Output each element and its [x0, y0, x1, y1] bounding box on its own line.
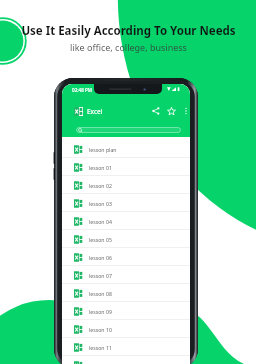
staticText: lesson 03	[89, 200, 112, 207]
button[interactable]: lesson 04	[62, 212, 190, 230]
button[interactable]: lesson 05	[62, 230, 190, 248]
button[interactable]	[76, 127, 181, 133]
staticText: lesson 07	[89, 272, 112, 279]
button[interactable]: lesson 03	[62, 194, 190, 212]
staticText: Excel	[87, 107, 103, 116]
staticText: Use It Easily According To Your Needs	[21, 23, 236, 39]
button[interactable]: lesson 07	[62, 266, 190, 284]
staticText: lesson 05	[89, 236, 112, 243]
button[interactable]: lesson 10	[62, 320, 190, 338]
button[interactable]: lesson plan	[62, 140, 190, 158]
staticText: 02:48 PM	[72, 87, 92, 93]
staticText: lesson 04	[89, 218, 112, 225]
button[interactable]: lesson 12	[62, 356, 190, 364]
staticText: lesson 06	[89, 254, 112, 261]
button[interactable]: lesson 01	[62, 158, 190, 176]
staticText: like office, college, business	[70, 41, 187, 53]
staticText: lesson 01	[89, 164, 112, 171]
button[interactable]: lesson 02	[62, 176, 190, 194]
button[interactable]: More options	[180, 105, 190, 117]
button[interactable]: lesson 08	[62, 284, 190, 302]
staticText: lesson 11	[89, 344, 112, 351]
button[interactable]: lesson 11	[62, 338, 190, 356]
button[interactable]: Share	[150, 105, 162, 117]
staticText: lesson 10	[89, 326, 112, 333]
staticText: lesson 02	[89, 182, 112, 189]
button[interactable]: lesson 09	[62, 302, 190, 320]
button[interactable]: lesson 06	[62, 248, 190, 266]
staticText: lesson plan	[89, 146, 117, 153]
button[interactable]: Favorite	[165, 105, 177, 117]
staticText: lesson 09	[89, 308, 112, 315]
staticText: lesson 08	[89, 290, 112, 297]
